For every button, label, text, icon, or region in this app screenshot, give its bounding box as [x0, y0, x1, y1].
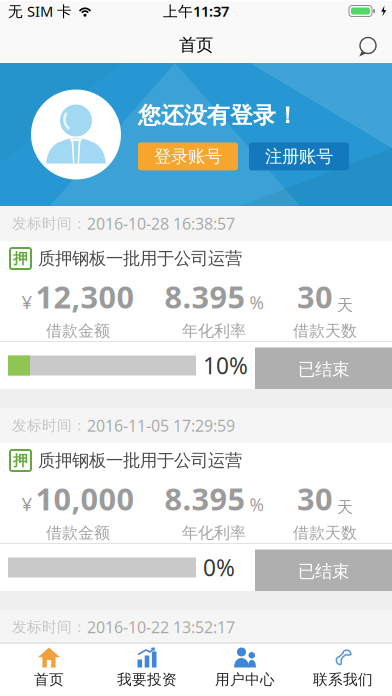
- staticText: 登录账号: [154, 146, 222, 167]
- button[interactable]: 我要投资: [98, 647, 196, 688]
- staticText: ¥: [21, 289, 32, 314]
- staticText: 质押钢板一批用于公司运营: [38, 248, 242, 269]
- staticText: 12,300: [35, 276, 134, 317]
- button[interactable]: 用户中心: [196, 647, 294, 688]
- staticText: 2016-10-28 16:38:57: [87, 213, 235, 234]
- staticText: ¥: [21, 491, 32, 516]
- staticText: 年化利率: [182, 523, 246, 543]
- staticText: 用户中心: [215, 670, 275, 688]
- staticText: 2016-11-05 17:29:59: [87, 415, 235, 436]
- button[interactable]: 已结束: [255, 549, 392, 593]
- button[interactable]: 首页: [0, 647, 98, 688]
- staticText: 借款金额: [46, 523, 110, 543]
- staticText: 2016-10-22 13:52:17: [87, 616, 235, 638]
- button[interactable]: 联系我们: [294, 647, 392, 688]
- staticText: 上午11:37: [163, 1, 229, 21]
- staticText: 已结束: [298, 561, 349, 582]
- staticText: 8.395: [164, 276, 245, 317]
- staticText: 发标时间：: [12, 416, 87, 434]
- staticText: 您还没有登录！: [138, 102, 299, 129]
- staticText: 0%: [203, 552, 235, 582]
- staticText: 借款天数: [293, 523, 357, 543]
- staticText: %: [249, 493, 263, 516]
- button[interactable]: 已结束: [255, 347, 392, 391]
- button[interactable]: 注册账号: [249, 142, 349, 170]
- staticText: 借款金额: [46, 321, 110, 341]
- staticText: 押: [13, 249, 28, 267]
- staticText: 10%: [203, 350, 248, 380]
- staticText: 注册账号: [265, 146, 333, 167]
- staticText: 30: [297, 478, 333, 519]
- button[interactable]: 消息: [356, 27, 392, 57]
- staticText: 8.395: [164, 478, 245, 519]
- staticText: 无 SIM 卡: [8, 1, 72, 21]
- staticText: 我要投资: [117, 670, 177, 688]
- staticText: 首页: [179, 34, 213, 56]
- staticText: 天: [337, 497, 353, 517]
- staticText: 年化利率: [182, 321, 246, 341]
- staticText: 10,000: [35, 478, 134, 519]
- staticText: 借款天数: [293, 321, 357, 341]
- staticText: 首页: [34, 670, 64, 688]
- button[interactable]: 发标时间：: [0, 206, 392, 389]
- staticText: 联系我们: [313, 670, 373, 688]
- staticText: 30: [297, 276, 333, 317]
- staticText: 发标时间：: [12, 618, 87, 636]
- staticText: 发标时间：: [12, 214, 87, 232]
- button[interactable]: 发标时间：: [0, 408, 392, 591]
- staticText: %: [249, 291, 263, 314]
- button[interactable]: 登录账号: [138, 142, 238, 170]
- staticText: 质押钢板一批用于公司运营: [38, 450, 242, 471]
- staticText: 押: [13, 451, 28, 469]
- staticText: 已结束: [298, 359, 349, 380]
- staticText: 天: [337, 295, 353, 315]
